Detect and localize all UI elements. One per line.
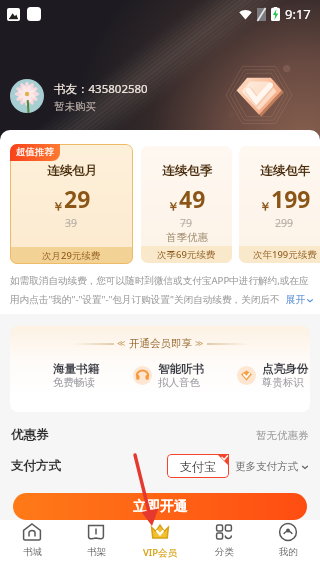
staticText: 开通会员即享 [129, 337, 192, 350]
button[interactable]: 书架 [64, 520, 128, 560]
staticText: 暂未购买 [54, 100, 96, 113]
staticText: 49 [179, 183, 206, 214]
button[interactable]: 立即开通 [13, 493, 307, 520]
staticText: 更多支付方式 [235, 460, 298, 473]
staticText: 连续包年 [260, 163, 310, 179]
button[interactable]: 我的 [256, 520, 320, 560]
button[interactable]: 海量书籍 [28, 362, 99, 389]
staticText: 分类 [215, 546, 234, 558]
button[interactable]: 书城 [0, 520, 64, 560]
button[interactable]: 支付宝 [167, 454, 229, 478]
staticText: 拟人音色 [158, 376, 200, 389]
staticText: 书城 [23, 546, 42, 558]
staticText: 如需取消自动续费，您可以随时到微信或支付宝APP中进行解约,或在应用内点击"我的… [10, 274, 314, 306]
button[interactable]: 更多支付方式 [235, 460, 309, 473]
button[interactable]: 连续包季 [141, 146, 232, 263]
staticText: 展开 [286, 294, 306, 306]
staticText: 连续包季 [162, 163, 212, 179]
staticText: 书架 [87, 546, 106, 558]
staticText: ￥ [167, 199, 179, 214]
staticText: 免费畅读 [53, 376, 95, 389]
staticText: 支付宝 [180, 459, 216, 474]
button[interactable]: 展开 [286, 294, 314, 306]
button[interactable]: 智能听书 [133, 362, 204, 389]
button[interactable]: 分类 [192, 520, 256, 560]
staticText: 29 [64, 183, 91, 214]
staticText: 连续包月 [47, 163, 97, 179]
staticText: 次季69元续费 [157, 248, 216, 261]
staticText: 立即开通 [133, 498, 187, 515]
staticText: VIP会员 [143, 546, 178, 559]
button[interactable]: 连续包月 [10, 144, 133, 264]
staticText: 书友：435802580 [54, 81, 148, 97]
staticText: 点亮身份 [262, 362, 308, 376]
staticText: 支付方式 [11, 458, 61, 474]
staticText: 暂无优惠券 [256, 429, 309, 442]
staticText: 尊贵标识 [262, 376, 304, 389]
staticText: ￥ [259, 199, 271, 214]
button[interactable]: VIP会员 [128, 520, 192, 560]
staticText: 我的 [279, 546, 298, 558]
button[interactable]: 点亮身份 [237, 362, 308, 389]
staticText: ￥ [52, 199, 64, 214]
staticText: 优惠券 [11, 427, 49, 443]
staticText: 199 [271, 183, 311, 214]
other: VIP gem [226, 62, 292, 128]
staticText: 首季优惠 [166, 231, 208, 244]
staticText: 9:17 [285, 5, 311, 23]
staticText: ≫ [195, 339, 204, 348]
staticText: 超值推荐 [16, 146, 54, 158]
staticText: 299 [275, 216, 294, 230]
staticText: 次月29元续费 [42, 249, 101, 262]
staticText: 智能听书 [158, 362, 204, 376]
button[interactable]: 连续包年 [239, 146, 320, 263]
staticText: 海量书籍 [53, 362, 99, 376]
button[interactable]: 优惠券 [0, 421, 320, 449]
staticText: 次年199元续费 [253, 248, 317, 261]
staticText: 79 [180, 216, 193, 230]
staticText: ≪ [117, 339, 126, 348]
staticText: 39 [65, 216, 78, 230]
